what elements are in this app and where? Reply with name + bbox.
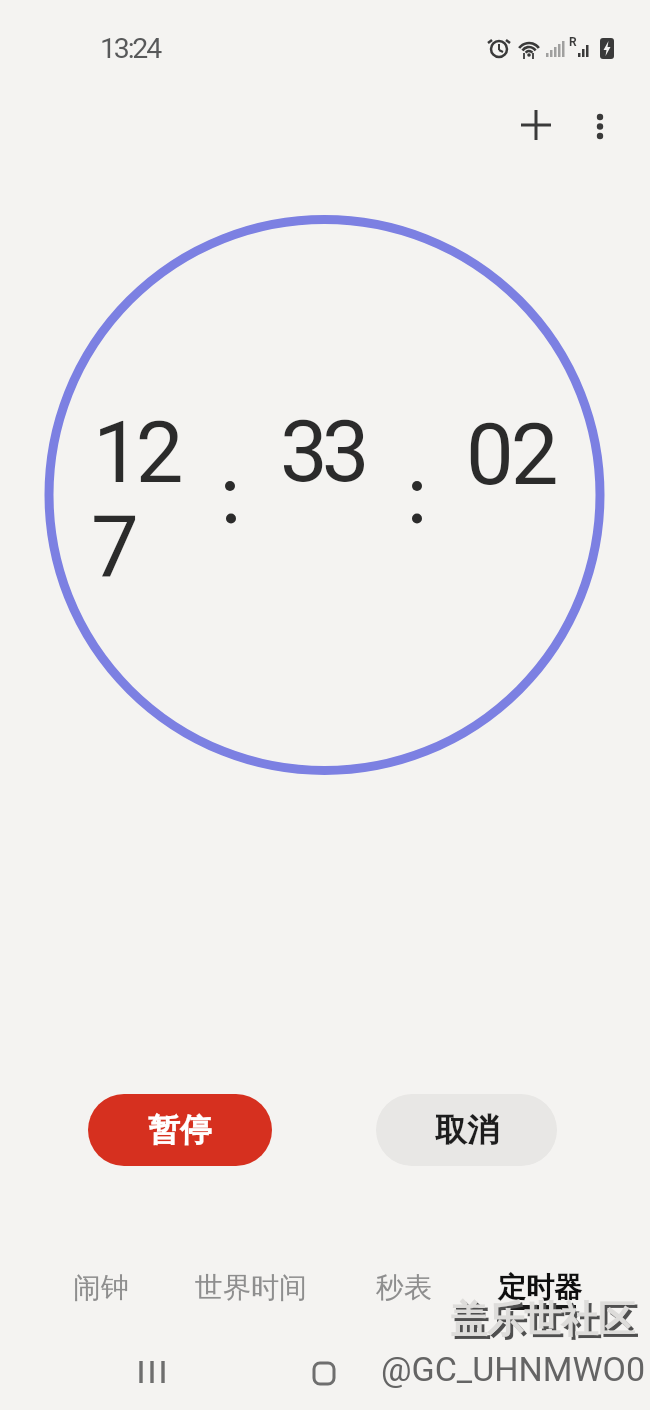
staticText: 暂停 bbox=[148, 1110, 212, 1150]
staticText: 33 bbox=[280, 402, 364, 502]
staticText: R bbox=[569, 35, 577, 49]
staticText: 闹钟 bbox=[73, 1270, 129, 1305]
button[interactable] bbox=[512, 101, 560, 149]
staticText: 12 bbox=[93, 403, 179, 503]
staticText: 盖乐世社区 bbox=[450, 1296, 635, 1343]
staticText: 盖乐世社区 bbox=[453, 1299, 638, 1346]
staticText: 7 bbox=[91, 497, 139, 597]
button[interactable]: 定时器 bbox=[495, 1258, 585, 1316]
staticText: @GC_UHNMWO0 bbox=[381, 1349, 646, 1389]
button[interactable]: 秒表 bbox=[362, 1258, 446, 1316]
staticText: 02 bbox=[466, 405, 556, 505]
staticText: 世界时间 bbox=[195, 1270, 307, 1305]
staticText: 13:24 bbox=[100, 32, 160, 65]
button[interactable]: 世界时间 bbox=[186, 1258, 316, 1316]
button[interactable] bbox=[576, 101, 624, 149]
staticText: 定时器 bbox=[498, 1270, 582, 1305]
button[interactable]: 闹钟 bbox=[59, 1258, 143, 1316]
staticText: 秒表 bbox=[376, 1270, 432, 1305]
button[interactable]: 取消 bbox=[376, 1094, 557, 1166]
staticText: 取消 bbox=[435, 1110, 499, 1150]
button[interactable]: 暂停 bbox=[88, 1094, 272, 1166]
